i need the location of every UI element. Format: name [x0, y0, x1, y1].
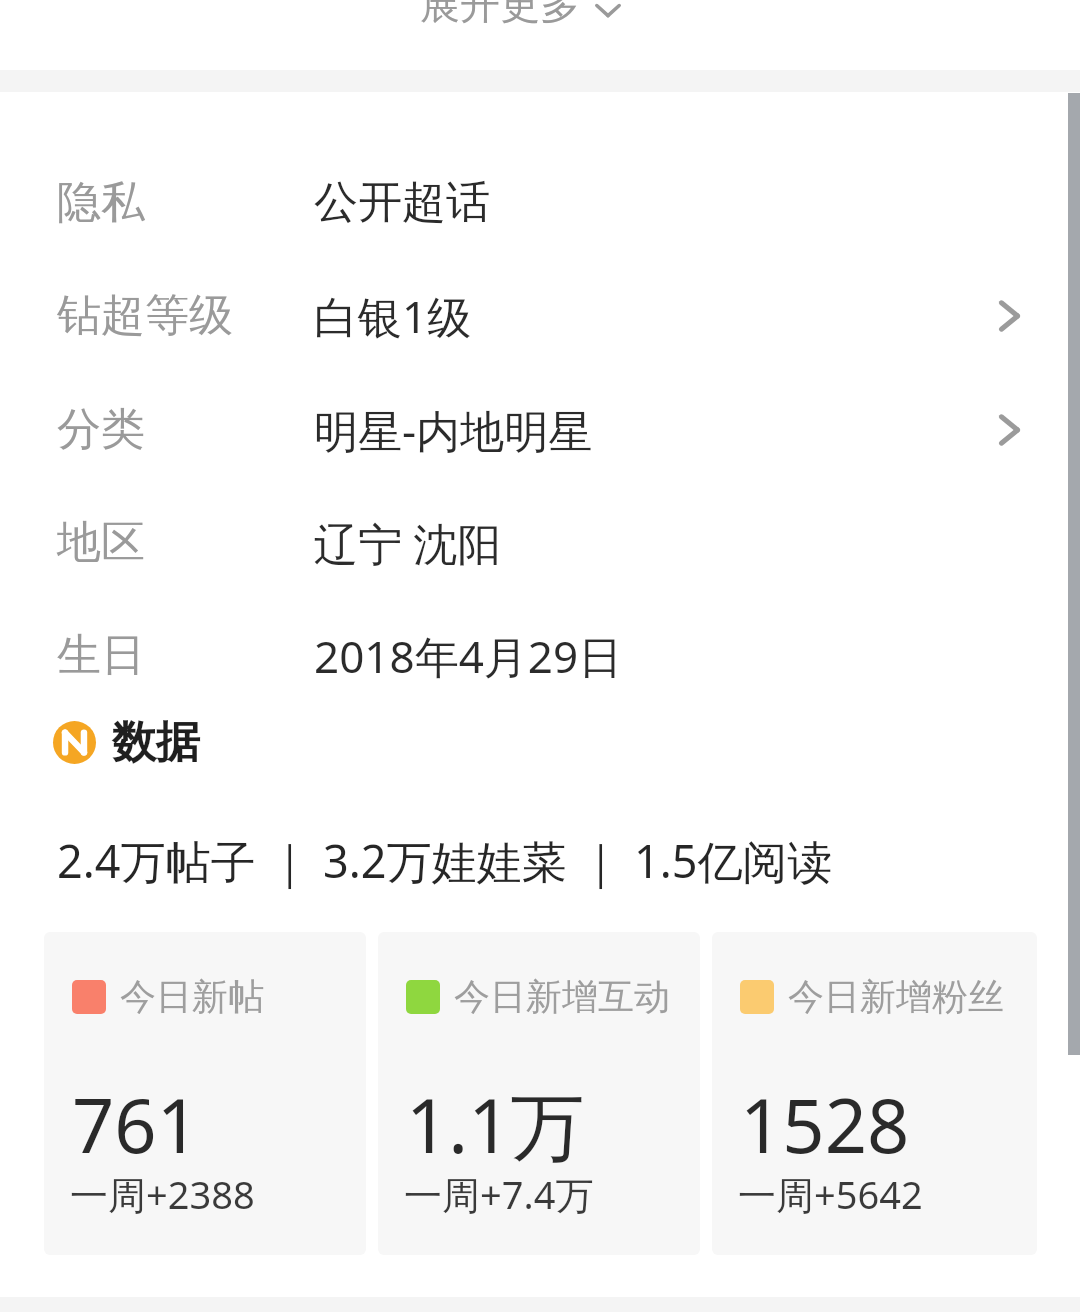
staticText: 2018年4月29日 — [314, 626, 623, 686]
staticText: 一周+7.4万 — [404, 1168, 594, 1220]
staticText: 761 — [72, 1074, 199, 1175]
staticText: 辽宁 沈阳 — [314, 513, 502, 573]
button[interactable]: 展开更多 — [420, 0, 660, 34]
staticText: 今日新增互动 — [454, 974, 670, 1019]
staticText: 白银1级 — [314, 286, 472, 346]
button[interactable]: 分类 — [0, 377, 1080, 482]
button[interactable]: 钻超等级 — [0, 263, 1080, 368]
staticText: 1.1万 — [406, 1074, 585, 1175]
button[interactable]: 数据 — [53, 714, 200, 770]
staticText: 数据 — [112, 715, 200, 770]
button[interactable]: 地区 — [0, 490, 1080, 595]
staticText: 公开超话 — [314, 175, 490, 230]
other: 查看详情 — [996, 408, 1026, 452]
staticText: 分类 — [57, 402, 145, 457]
button[interactable]: 今日新增粉丝 — [712, 932, 1037, 1255]
staticText: 生日 — [57, 628, 145, 683]
other: 查看详情 — [996, 294, 1026, 338]
staticText: 2.4万帖子 ｜ 3.2万娃娃菜 ｜ 1.5亿阅读 — [57, 830, 833, 891]
staticText: 地区 — [57, 515, 145, 570]
button[interactable]: 生日 — [0, 603, 1080, 708]
button[interactable]: 今日新帖 — [44, 932, 366, 1255]
staticText: 今日新增粉丝 — [788, 974, 1004, 1019]
staticText: 一周+2388 — [70, 1168, 255, 1220]
staticText: 隐私 — [57, 175, 145, 230]
staticText: 今日新帖 — [120, 974, 264, 1019]
staticText: 一周+5642 — [738, 1168, 923, 1220]
staticText: 展开更多 — [420, 0, 580, 29]
button[interactable]: 今日新增互动 — [378, 932, 700, 1255]
staticText: 1528 — [740, 1074, 910, 1175]
staticText: 明星-内地明星 — [314, 400, 593, 460]
staticText: 钻超等级 — [57, 288, 233, 343]
button[interactable]: 隐私 — [0, 150, 1080, 255]
